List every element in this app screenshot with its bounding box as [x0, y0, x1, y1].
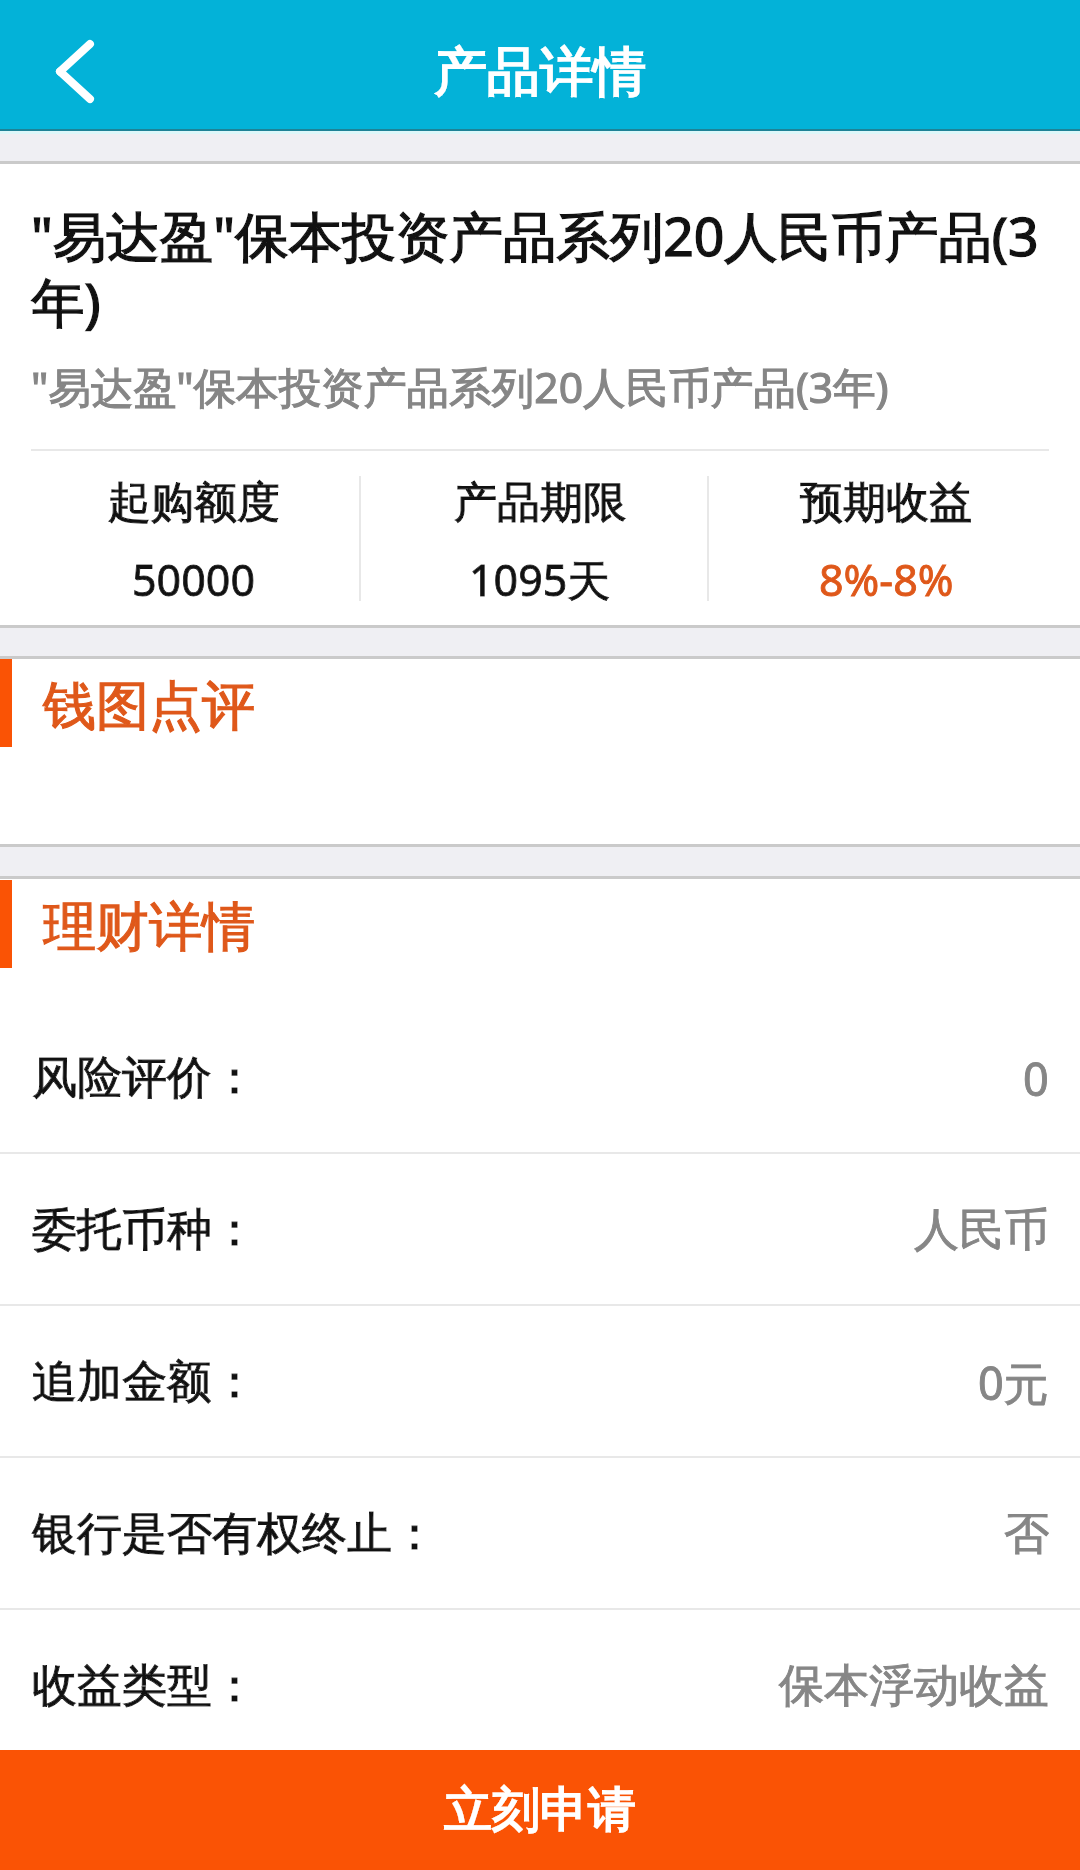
staticText: 钱图点评: [43, 673, 255, 740]
staticText: 理财详情: [43, 894, 255, 961]
staticText: 起购额度: [108, 476, 280, 530]
staticText: 追加金额：: [32, 1354, 257, 1411]
staticText: 钱图点评: [43, 673, 255, 740]
staticText: "易达盈"保本投资产品系列20人民币产品(3年): [31, 357, 889, 415]
staticText: 起购额度: [108, 476, 280, 530]
staticText: 人民币: [914, 1202, 1049, 1259]
button[interactable]: 立刻申请: [0, 1750, 1080, 1870]
staticText: "易达盈"保本投资产品系列20人民币产品(3年): [31, 357, 889, 415]
staticText: 0元: [978, 1352, 1049, 1413]
staticText: 银行是否有权终止：: [32, 1506, 437, 1563]
staticText: 委托币种：: [32, 1202, 257, 1259]
staticText: 产品期限: [454, 476, 626, 530]
staticText: 风险评价：: [32, 1050, 257, 1107]
staticText: 预期收益: [800, 476, 972, 530]
staticText: 追加金额：: [32, 1354, 257, 1411]
staticText: 1095天: [469, 550, 611, 609]
button[interactable]: 追加金额：: [0, 1306, 1080, 1458]
staticText: 预期收益: [800, 476, 972, 530]
button[interactable]: 风险评价：: [0, 1002, 1080, 1154]
staticText: 0: [1023, 1048, 1049, 1109]
staticText: 否: [1004, 1506, 1049, 1563]
staticText: "易达盈"保本投资产品系列20人民币产品(3年): [31, 199, 1054, 338]
staticText: 立刻申请: [444, 1780, 636, 1840]
button[interactable]: Back: [20, 21, 130, 121]
staticText: 产品期限: [454, 476, 626, 530]
staticText: 产品详情: [434, 39, 646, 106]
staticText: 否: [1004, 1506, 1049, 1563]
staticText: 保本浮动收益: [779, 1658, 1049, 1715]
staticText: 保本浮动收益: [779, 1658, 1049, 1715]
staticText: 0: [1023, 1048, 1049, 1109]
staticText: 立刻申请: [444, 1780, 636, 1840]
staticText: 收益类型：: [32, 1658, 257, 1715]
staticText: 50000: [132, 550, 255, 609]
staticText: 委托币种：: [32, 1202, 257, 1259]
staticText: 8%-8%: [819, 550, 954, 609]
staticText: 产品详情: [434, 39, 646, 106]
button[interactable]: 银行是否有权终止：: [0, 1458, 1080, 1610]
staticText: 收益类型：: [32, 1658, 257, 1715]
staticText: 50000: [132, 550, 255, 609]
staticText: 1095天: [469, 550, 611, 609]
staticText: "易达盈"保本投资产品系列20人民币产品(3年): [31, 199, 1054, 338]
button[interactable]: 委托币种：: [0, 1154, 1080, 1306]
staticText: 理财详情: [43, 894, 255, 961]
staticText: 0元: [978, 1352, 1049, 1413]
staticText: 8%-8%: [819, 550, 954, 609]
staticText: 人民币: [914, 1202, 1049, 1259]
staticText: 银行是否有权终止：: [32, 1506, 437, 1563]
button[interactable]: 收益类型：: [0, 1610, 1080, 1750]
staticText: 风险评价：: [32, 1050, 257, 1107]
